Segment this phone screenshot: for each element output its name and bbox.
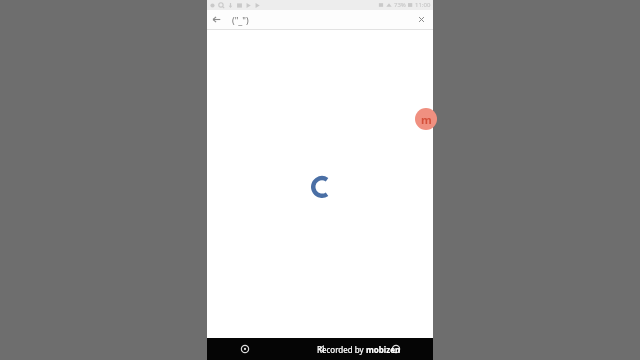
staticText: ("_") xyxy=(232,14,249,26)
button[interactable]: Mobizen floating button xyxy=(415,108,437,130)
staticText: mobizen xyxy=(366,344,401,355)
button[interactable]: Home xyxy=(358,338,433,360)
staticText: m xyxy=(421,112,432,127)
button[interactable]: Clear xyxy=(412,10,431,29)
staticText: 73% xyxy=(394,1,406,9)
button[interactable]: ("_") xyxy=(232,10,412,29)
button[interactable]: Back xyxy=(283,338,358,360)
button[interactable]: Recents xyxy=(207,338,283,360)
button[interactable]: Back xyxy=(207,10,226,29)
staticText: Recorded by xyxy=(317,344,366,355)
staticText: 11:00 xyxy=(415,1,431,9)
